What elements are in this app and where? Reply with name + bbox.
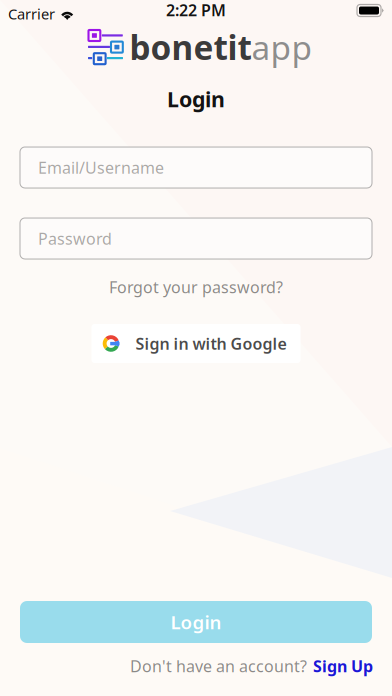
staticText: Email/Username [38,157,164,178]
staticText: Sign in with Google [135,333,286,354]
button[interactable]: Forgot your password? [96,275,296,299]
button[interactable]: Login [20,601,372,643]
staticText: Sign Up [313,655,373,677]
staticText: Login [167,85,225,113]
button[interactable]: Sign in with Google [91,324,300,363]
staticText: bonetit [129,25,251,69]
staticText: 2:22 PM [166,0,226,21]
staticText: Carrier [8,4,55,23]
button[interactable]: Sign Up [313,655,373,677]
button[interactable]: Password [20,218,372,259]
staticText: Password [38,228,112,249]
staticText: app [251,25,312,69]
staticText: Forgot your password? [109,276,283,298]
button[interactable]: Email/Username [20,147,372,188]
staticText: Don't have an account? [130,655,307,677]
staticText: Login [170,610,221,634]
